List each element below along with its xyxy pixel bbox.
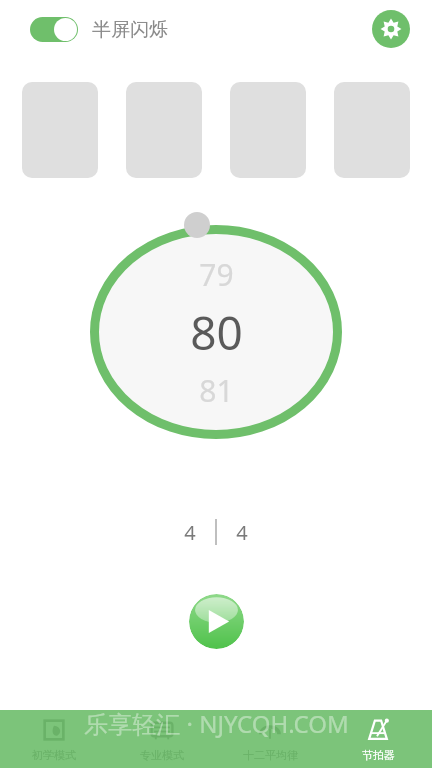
staticText: 十二平均律: [243, 748, 298, 762]
staticText: 专业模式: [140, 748, 184, 762]
button[interactable]: 十二平均律: [216, 710, 324, 768]
button[interactable]: Play: [189, 594, 244, 649]
button[interactable]: 79: [90, 212, 342, 452]
button[interactable]: 4: [165, 515, 215, 549]
staticText: 81: [199, 370, 234, 411]
staticText: 半屏闪烁: [92, 18, 168, 42]
staticText: 4: [184, 519, 196, 546]
button[interactable]: 节拍器: [324, 710, 432, 768]
button[interactable]: Settings: [372, 10, 410, 48]
staticText: 节拍器: [362, 748, 395, 762]
button[interactable]: [334, 82, 410, 178]
button[interactable]: 专业模式: [108, 710, 216, 768]
staticText: 4: [236, 519, 248, 546]
staticText: 初学模式: [32, 748, 76, 762]
staticText: 80: [190, 301, 243, 364]
button[interactable]: 初学模式: [0, 710, 108, 768]
staticText: 乐享轻汇 · NJYCQH.COM: [84, 707, 349, 740]
button[interactable]: [126, 82, 202, 178]
button[interactable]: 半屏闪烁: [30, 17, 168, 42]
button[interactable]: 4: [217, 515, 267, 549]
button[interactable]: [230, 82, 306, 178]
button[interactable]: [22, 82, 98, 178]
staticText: 79: [199, 254, 234, 295]
